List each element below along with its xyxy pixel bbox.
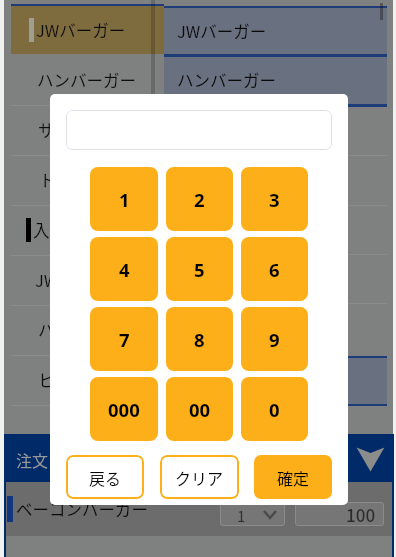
staticText: 00 (189, 397, 211, 422)
staticText: 0 (269, 397, 280, 422)
button[interactable] (11, 6, 164, 54)
button[interactable] (66, 110, 332, 150)
staticText: 注文リスト (16, 448, 97, 471)
staticText: ハンバーガー (37, 68, 136, 92)
button[interactable]: 0 (241, 377, 308, 441)
staticText: 4 (119, 257, 130, 282)
staticText: トースト (39, 168, 105, 192)
staticText: クリア (175, 466, 224, 489)
staticText: 7 (119, 327, 130, 352)
staticText: ハンバーガー (177, 68, 276, 92)
button[interactable]: 00 (166, 377, 233, 441)
button[interactable]: 4 (90, 237, 158, 301)
staticText: JWバーガー (177, 19, 267, 43)
staticText: ヒレカツ (38, 368, 104, 392)
button[interactable]: 1 (220, 502, 285, 526)
button[interactable]: 8 (166, 307, 233, 371)
button[interactable]: 2 (166, 167, 233, 231)
staticText: チーズバーガー (177, 369, 292, 393)
button[interactable]: Collapse order panel (356, 447, 385, 472)
staticText: ハンバーグ (38, 318, 121, 342)
staticText: サンドイッチ (38, 118, 137, 142)
staticText: 5 (194, 257, 205, 282)
staticText: JWバーガー (35, 268, 125, 292)
button[interactable]: 5 (166, 237, 233, 301)
button[interactable]: 3 (241, 167, 308, 231)
staticText: 6 (269, 257, 280, 282)
staticText: 確定 (277, 466, 310, 489)
staticText: 3 (269, 187, 280, 212)
staticText: 8 (194, 327, 205, 352)
staticText: 1 (237, 505, 246, 526)
staticText: 100 (346, 502, 376, 526)
button[interactable] (164, 358, 387, 404)
button[interactable]: 6 (241, 237, 308, 301)
staticText: 1 (119, 187, 130, 212)
staticText: 2 (194, 187, 205, 212)
button[interactable]: 9 (241, 307, 308, 371)
staticText: ベーコンバーガー (16, 497, 148, 521)
button[interactable]: 1 (90, 167, 158, 231)
button[interactable] (164, 8, 387, 55)
button[interactable]: 000 (90, 377, 158, 441)
button[interactable]: 確定 (254, 455, 332, 499)
button[interactable]: 注文リスト (6, 436, 392, 482)
button[interactable]: 7 (90, 307, 158, 371)
button[interactable] (164, 57, 387, 104)
button[interactable]: クリア (160, 455, 239, 499)
staticText: 入力はこちら (33, 218, 132, 242)
staticText: 000 (108, 397, 140, 422)
staticText: 9 (269, 327, 280, 352)
button[interactable]: 戻る (66, 455, 144, 499)
staticText: 戻る (89, 466, 122, 489)
staticText: JWバーガー (36, 18, 126, 42)
